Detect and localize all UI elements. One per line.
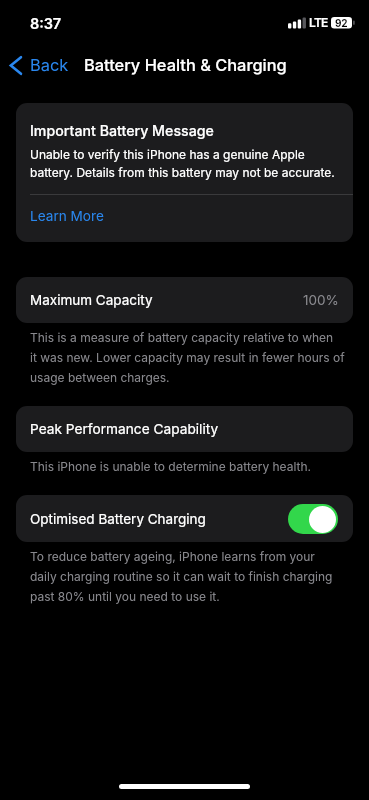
staticText: Unable to verify this iPhone has a genui…: [30, 147, 339, 180]
button[interactable]: Learn More: [16, 195, 353, 242]
staticText: 92: [335, 17, 348, 29]
button[interactable]: Maximum Capacity: [16, 277, 353, 323]
staticText: Peak Performance Capability: [30, 421, 219, 438]
staticText: This is a measure of battery capacity re…: [30, 330, 345, 385]
button[interactable]: Back: [0, 49, 77, 81]
staticText: LTE: [309, 15, 328, 30]
staticText: Battery Health & Charging: [84, 55, 287, 75]
staticText: Learn More: [30, 208, 104, 224]
staticText: Optimised Battery Charging: [30, 511, 206, 527]
button[interactable]: Optimised Battery Charging toggle: [288, 504, 338, 534]
staticText: To reduce battery ageing, iPhone learns …: [30, 549, 333, 604]
staticText: Maximum Capacity: [30, 292, 153, 308]
staticText: Back: [30, 55, 69, 75]
staticText: This iPhone is unable to determine batte…: [30, 459, 312, 474]
button[interactable]: Peak Performance Capability: [16, 406, 353, 452]
staticText: 8:37: [30, 15, 62, 33]
staticText: 100%: [303, 292, 339, 308]
staticText: Important Battery Message: [30, 122, 214, 139]
